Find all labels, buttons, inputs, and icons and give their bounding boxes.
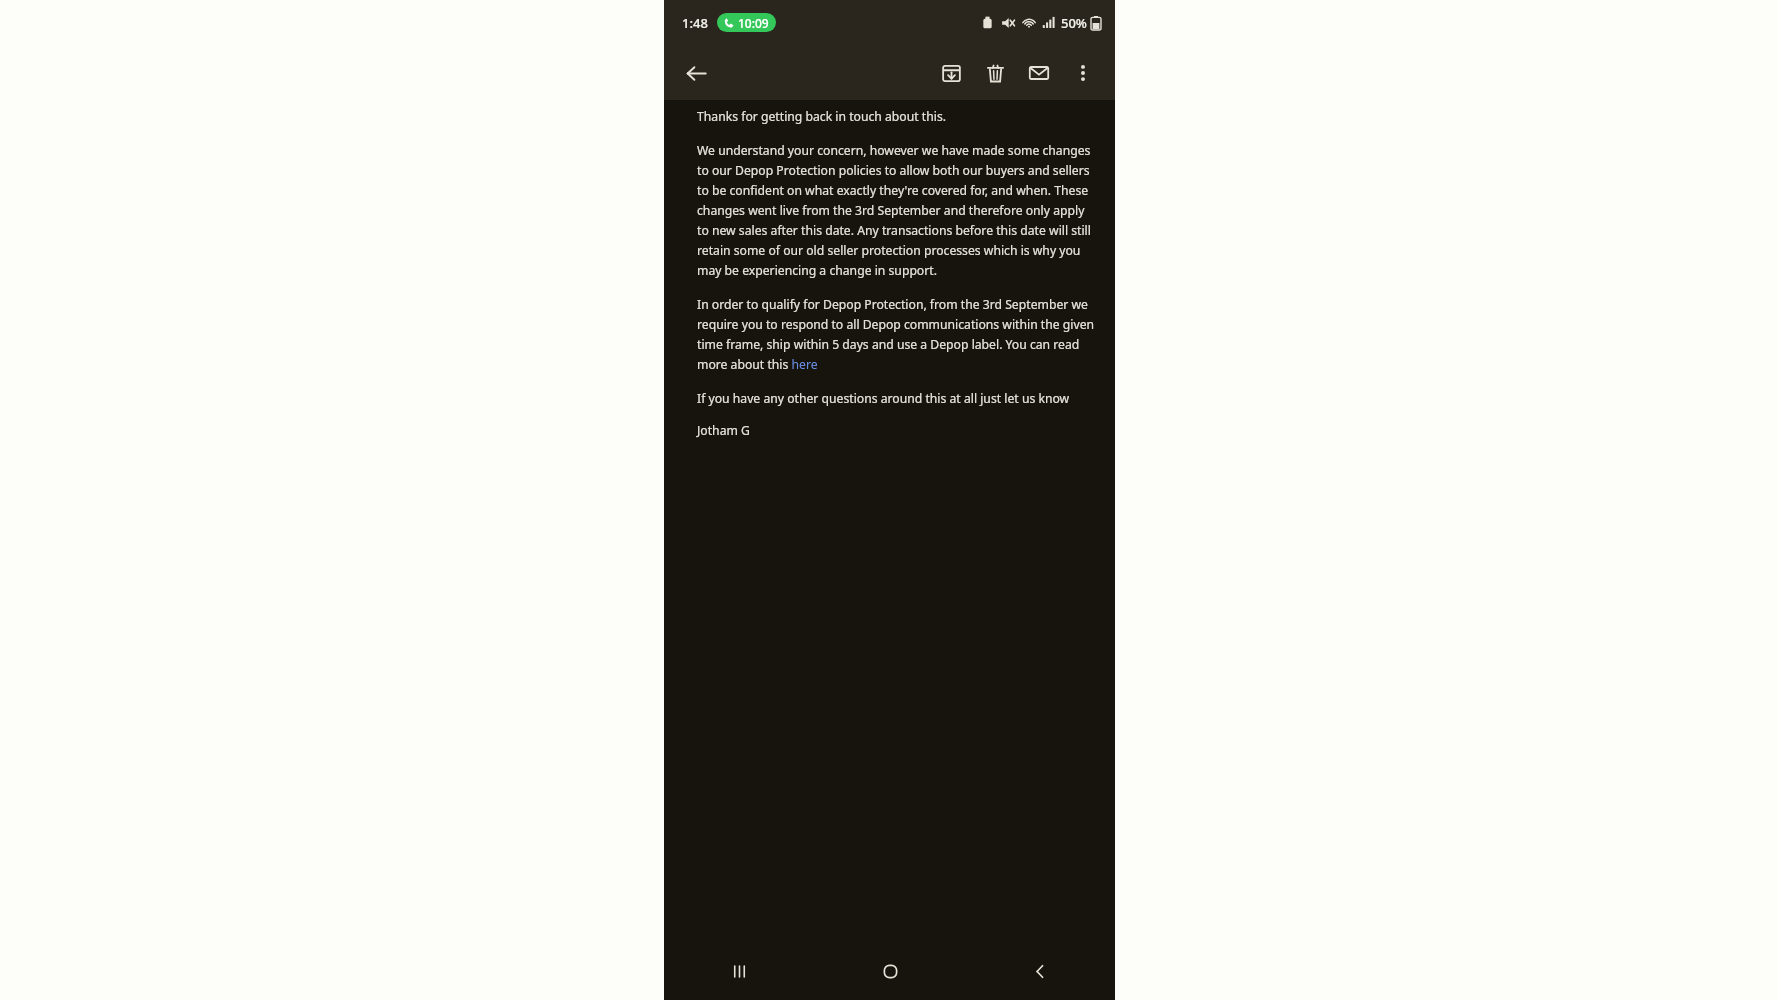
staticText: 10:09 [738, 15, 769, 31]
button[interactable]: Archive [929, 51, 973, 95]
staticText: If you have any other questions around t… [697, 390, 1070, 407]
staticText: Thanks for getting back in touch about t… [697, 108, 947, 125]
button[interactable]: Recents [664, 942, 815, 1000]
button[interactable]: Home [815, 942, 965, 1000]
button[interactable]: More options [1061, 51, 1105, 95]
button[interactable]: Delete [973, 51, 1017, 95]
staticText: In order to qualify for Depop Protection… [697, 296, 1097, 373]
button[interactable]: Mark as unread [1017, 51, 1061, 95]
staticText: 1:48 [682, 14, 708, 32]
staticText: 50% [1061, 14, 1087, 32]
button[interactable]: Back [965, 942, 1115, 1000]
button[interactable]: Back [674, 51, 718, 95]
staticText: We understand your concern, however we h… [697, 142, 1097, 279]
staticText: Jotham G [697, 422, 750, 439]
